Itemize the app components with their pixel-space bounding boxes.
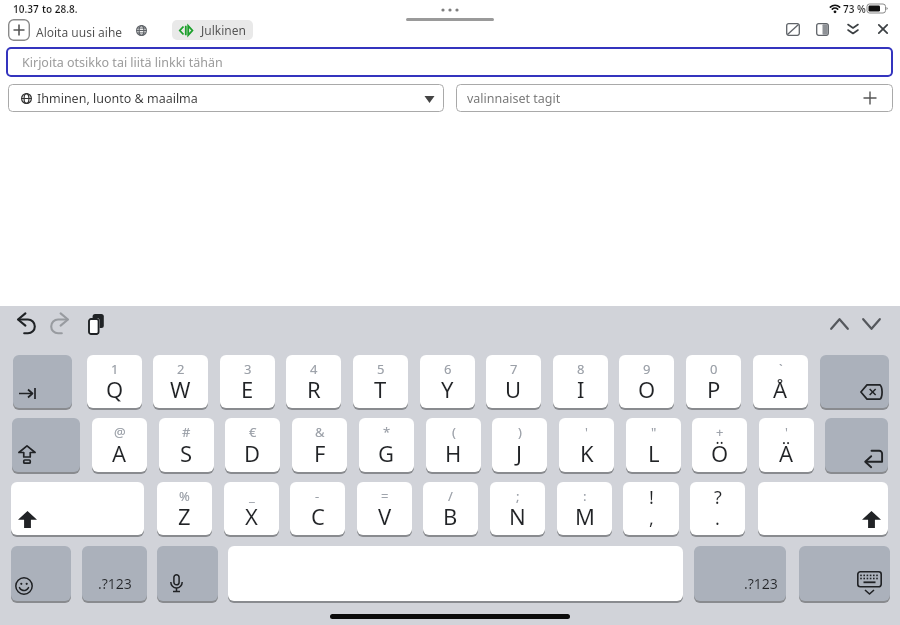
button[interactable]: : bbox=[557, 482, 612, 535]
staticText: € bbox=[249, 423, 257, 441]
button[interactable]: 1 bbox=[87, 355, 142, 408]
button[interactable] bbox=[830, 318, 849, 330]
staticText: Julkinen bbox=[201, 22, 246, 38]
staticText: S bbox=[180, 438, 193, 468]
button[interactable]: ; bbox=[490, 482, 545, 535]
button[interactable] bbox=[847, 23, 859, 36]
staticText: V bbox=[378, 501, 392, 531]
button[interactable]: 7 bbox=[486, 355, 541, 408]
button[interactable] bbox=[758, 482, 888, 535]
staticText: 1 bbox=[111, 360, 119, 378]
button[interactable]: Ihminen, luonto & maailma bbox=[8, 84, 444, 112]
button[interactable] bbox=[8, 19, 30, 41]
staticText: ( bbox=[452, 423, 456, 441]
button[interactable]: 3 bbox=[220, 355, 275, 408]
button[interactable]: _ bbox=[224, 482, 279, 535]
button[interactable]: / bbox=[423, 482, 478, 535]
staticText: _ bbox=[249, 487, 255, 505]
staticText: ' bbox=[785, 423, 788, 441]
button[interactable] bbox=[16, 313, 38, 334]
staticText: Ihminen, luonto & maailma bbox=[37, 90, 198, 107]
button[interactable]: # bbox=[159, 418, 214, 472]
staticText: " bbox=[651, 423, 657, 441]
staticText: Aloita uusi aihe bbox=[36, 24, 123, 40]
button[interactable] bbox=[878, 24, 888, 34]
button[interactable]: .?123 bbox=[82, 546, 147, 601]
staticText: L bbox=[648, 438, 660, 468]
button[interactable]: ) bbox=[492, 418, 547, 472]
staticText: , bbox=[649, 506, 654, 531]
button[interactable] bbox=[11, 546, 71, 601]
staticText: 6 bbox=[444, 360, 452, 378]
button[interactable]: 0 bbox=[686, 355, 741, 408]
staticText: : bbox=[583, 487, 587, 505]
button[interactable] bbox=[799, 546, 890, 601]
staticText: = bbox=[381, 487, 389, 505]
button[interactable]: - bbox=[290, 482, 345, 535]
button[interactable]: ( bbox=[426, 418, 481, 472]
button[interactable]: ! bbox=[623, 482, 679, 535]
staticText: Kirjoita otsikko tai liitä linkki tähän bbox=[22, 54, 223, 71]
button[interactable]: 4 bbox=[286, 355, 341, 408]
button[interactable]: " bbox=[626, 418, 681, 472]
button[interactable]: 9 bbox=[619, 355, 674, 408]
button[interactable] bbox=[862, 318, 881, 330]
button[interactable] bbox=[11, 482, 144, 535]
button[interactable]: = bbox=[357, 482, 412, 535]
button[interactable] bbox=[48, 313, 70, 334]
staticText: 9 bbox=[643, 360, 651, 378]
button[interactable]: + bbox=[692, 418, 747, 472]
button[interactable] bbox=[820, 355, 889, 408]
button[interactable]: ` bbox=[753, 355, 808, 408]
button[interactable]: Kirjoita otsikko tai liitä linkki tähän bbox=[6, 47, 893, 77]
staticText: 3 bbox=[244, 360, 252, 378]
staticText: H bbox=[445, 438, 462, 468]
staticText: X bbox=[245, 501, 258, 531]
button[interactable]: 5 bbox=[353, 355, 408, 408]
staticText: ! bbox=[649, 485, 654, 510]
staticText: E bbox=[241, 374, 254, 404]
staticText: ) bbox=[518, 423, 522, 441]
button[interactable]: ' bbox=[559, 418, 614, 472]
button[interactable]: valinnaiset tagit bbox=[456, 84, 893, 112]
staticText: Y bbox=[441, 374, 454, 404]
button[interactable]: % bbox=[157, 482, 212, 535]
staticText: Z bbox=[178, 501, 191, 531]
button[interactable] bbox=[157, 546, 218, 601]
staticText: + bbox=[716, 423, 724, 441]
staticText: C bbox=[311, 501, 325, 531]
button[interactable] bbox=[12, 418, 80, 472]
staticText: P bbox=[707, 374, 721, 404]
button[interactable]: ' bbox=[759, 418, 814, 472]
button[interactable]: ? bbox=[690, 482, 745, 535]
button[interactable]: € bbox=[225, 418, 280, 472]
button[interactable]: 6 bbox=[420, 355, 475, 408]
staticText: F bbox=[314, 438, 326, 468]
staticText: M bbox=[575, 501, 595, 531]
button[interactable] bbox=[88, 314, 104, 335]
button[interactable]: * bbox=[359, 418, 414, 472]
staticText: Q bbox=[106, 374, 124, 404]
staticText: valinnaiset tagit bbox=[467, 90, 561, 107]
staticText: ; bbox=[516, 487, 520, 505]
staticText: & bbox=[315, 423, 325, 441]
button[interactable] bbox=[13, 355, 72, 408]
staticText: ` bbox=[779, 360, 783, 378]
staticText: 5 bbox=[377, 360, 385, 378]
button[interactable] bbox=[825, 418, 888, 472]
button[interactable]: & bbox=[292, 418, 347, 472]
button[interactable]: 2 bbox=[153, 355, 208, 408]
staticText: D bbox=[244, 438, 261, 468]
staticText: % bbox=[179, 487, 190, 505]
staticText: 8 bbox=[577, 360, 585, 378]
staticText: 4 bbox=[310, 360, 318, 378]
button[interactable]: 8 bbox=[553, 355, 608, 408]
button[interactable]: Julkinen bbox=[172, 20, 253, 40]
button[interactable]: .?123 bbox=[694, 546, 786, 601]
button[interactable]: @ bbox=[92, 418, 147, 472]
staticText: Å bbox=[773, 374, 788, 404]
button[interactable] bbox=[786, 23, 800, 36]
button[interactable] bbox=[816, 23, 829, 36]
staticText: 2 bbox=[177, 360, 185, 378]
